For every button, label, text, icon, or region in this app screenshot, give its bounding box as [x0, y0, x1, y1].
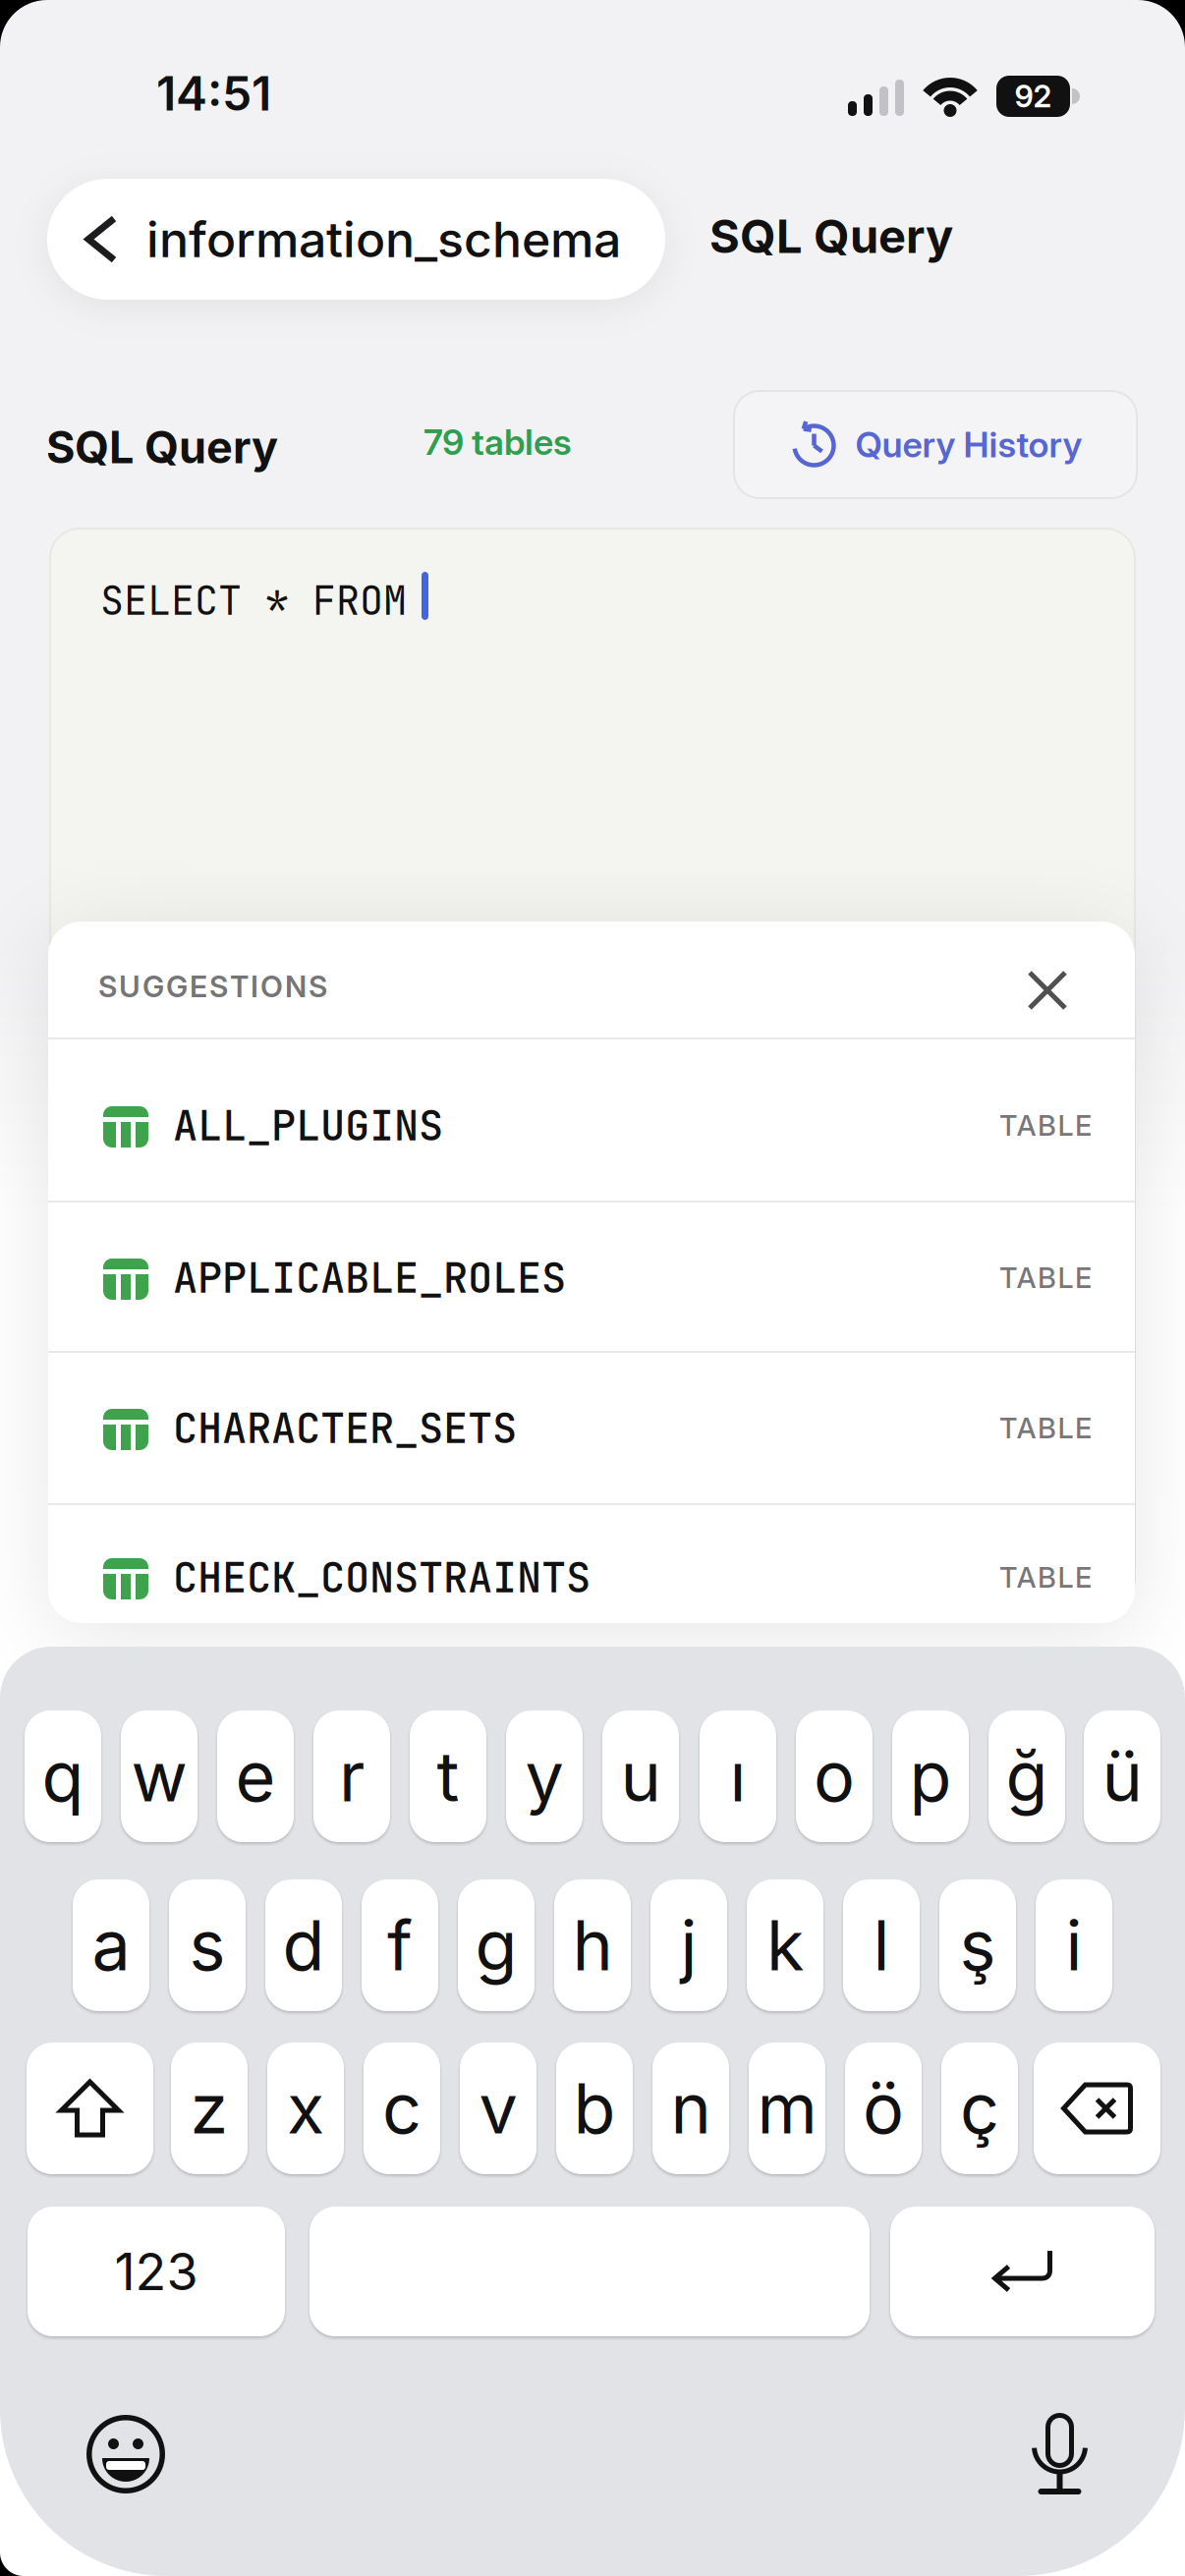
staticText: TABLE: [999, 1260, 1092, 1295]
button[interactable]: ş: [939, 1879, 1016, 2011]
staticText: b: [573, 2067, 616, 2150]
staticText: SQL Query: [709, 208, 953, 264]
button[interactable]: n: [652, 2043, 729, 2174]
staticText: s: [189, 1904, 226, 1987]
staticText: a: [92, 1904, 130, 1987]
staticText: l: [873, 1904, 890, 1987]
staticText: TABLE: [999, 1108, 1092, 1143]
button[interactable]: f: [362, 1879, 438, 2011]
button[interactable]: ç: [941, 2043, 1018, 2174]
button[interactable]: w: [121, 1710, 197, 1842]
button[interactable]: Return: [890, 2207, 1155, 2336]
button[interactable]: Close suggestions: [1018, 961, 1077, 1020]
button[interactable]: b: [556, 2043, 633, 2174]
staticText: ş: [959, 1904, 996, 1987]
staticText: 79 tables: [423, 420, 572, 463]
button[interactable]: APPLICABLE_ROLES: [48, 1202, 1135, 1353]
button[interactable]: CHARACTER_SETS: [48, 1352, 1135, 1503]
staticText: TABLE: [999, 1411, 1092, 1445]
staticText: e: [235, 1735, 276, 1818]
staticText: information_schema: [146, 210, 621, 269]
button[interactable]: o: [796, 1710, 873, 1842]
staticText: v: [479, 2067, 517, 2150]
staticText: r: [339, 1735, 365, 1818]
staticText: ğ: [1006, 1735, 1048, 1818]
staticText: z: [190, 2067, 228, 2150]
staticText: TABLE: [999, 1560, 1092, 1595]
staticText: w: [131, 1735, 187, 1818]
staticText: u: [621, 1735, 661, 1818]
staticText: x: [287, 2067, 324, 2150]
button[interactable]: y: [506, 1710, 583, 1842]
staticText: t: [437, 1735, 459, 1818]
button[interactable]: Back to information_schema: [47, 179, 665, 300]
button[interactable]: u: [602, 1710, 679, 1842]
button[interactable]: z: [171, 2043, 248, 2174]
button[interactable]: h: [554, 1879, 631, 2011]
staticText: d: [282, 1904, 325, 1987]
button[interactable]: CHECK_CONSTRAINTS: [48, 1501, 1135, 1652]
button[interactable]: g: [458, 1879, 535, 2011]
staticText: 92: [1015, 78, 1052, 115]
staticText: ö: [863, 2067, 904, 2150]
button[interactable]: q: [25, 1710, 101, 1842]
button[interactable]: x: [267, 2043, 344, 2174]
button[interactable]: v: [460, 2043, 536, 2174]
staticText: CHARACTER_SETS: [173, 1401, 517, 1455]
button[interactable]: l: [843, 1879, 920, 2011]
button[interactable]: a: [73, 1879, 149, 2011]
staticText: ALL_PLUGINS: [173, 1098, 443, 1153]
staticText: 14:51: [156, 65, 271, 122]
staticText: APPLICABLE_ROLES: [173, 1251, 566, 1305]
staticText: SUGGESTIONS: [98, 969, 327, 1004]
button[interactable]: Delete: [1034, 2043, 1160, 2174]
button[interactable]: j: [650, 1879, 727, 2011]
button[interactable]: ı: [700, 1710, 776, 1842]
button[interactable]: p: [892, 1710, 969, 1842]
button[interactable]: ü: [1084, 1710, 1160, 1842]
button[interactable]: k: [747, 1879, 823, 2011]
staticText: p: [909, 1735, 952, 1818]
button[interactable]: s: [169, 1879, 246, 2011]
button[interactable]: ALL_PLUGINS: [48, 1049, 1135, 1201]
staticText: y: [525, 1735, 564, 1818]
staticText: k: [766, 1904, 804, 1987]
staticText: Query History: [855, 423, 1082, 466]
button[interactable]: c: [364, 2043, 440, 2174]
button[interactable]: e: [217, 1710, 294, 1842]
staticText: ı: [730, 1735, 746, 1818]
button[interactable]: m: [749, 2043, 825, 2174]
staticText: h: [572, 1904, 613, 1987]
button[interactable]: Dictation: [1032, 2413, 1088, 2495]
staticText: f: [387, 1904, 413, 1987]
staticText: j: [680, 1904, 697, 1987]
staticText: q: [42, 1735, 84, 1818]
staticText: n: [671, 2067, 711, 2150]
button[interactable]: Emoji: [86, 2415, 165, 2493]
staticText: o: [814, 1735, 855, 1818]
staticText: ç: [960, 2067, 999, 2150]
staticText: g: [475, 1904, 517, 1987]
button[interactable]: Shift: [27, 2043, 153, 2174]
staticText: SQL Query: [46, 420, 278, 474]
button[interactable]: ğ: [988, 1710, 1065, 1842]
button[interactable]: t: [410, 1710, 486, 1842]
staticText: m: [757, 2067, 817, 2150]
button[interactable]: i: [1036, 1879, 1112, 2011]
button[interactable]: 123: [28, 2207, 285, 2336]
button[interactable]: Query History: [733, 390, 1138, 499]
staticText: SELECT * FROM: [100, 575, 407, 627]
button[interactable]: d: [265, 1879, 342, 2011]
staticText: c: [382, 2067, 422, 2150]
staticText: ü: [1102, 1735, 1142, 1818]
button[interactable]: r: [313, 1710, 390, 1842]
button[interactable]: ö: [845, 2043, 922, 2174]
staticText: 123: [114, 2240, 198, 2302]
staticText: CHECK_CONSTRAINTS: [173, 1550, 591, 1605]
staticText: i: [1066, 1904, 1082, 1987]
